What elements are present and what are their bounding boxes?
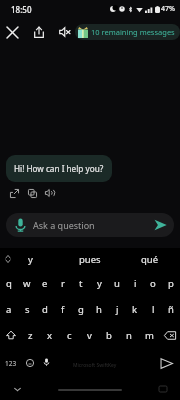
button[interactable]: q — [0, 270, 18, 296]
staticText: u — [114, 277, 120, 290]
staticText: 47% — [161, 4, 175, 14]
button[interactable]: Hide keyboard — [6, 378, 29, 400]
staticText: q — [6, 277, 12, 290]
button[interactable]: r — [54, 270, 72, 296]
button[interactable]: Send — [152, 348, 180, 378]
button[interactable]: Hi! How can I help you? — [6, 155, 112, 182]
button[interactable]: j — [108, 296, 126, 322]
button[interactable]: h — [90, 296, 108, 322]
button[interactable]: u — [108, 270, 126, 296]
button[interactable]: Backspace — [159, 322, 180, 348]
button[interactable]: z — [21, 322, 40, 348]
staticText: h — [96, 303, 102, 316]
button[interactable]: o — [144, 270, 162, 296]
staticText: 10 remaining messages — [91, 27, 175, 37]
staticText: w — [23, 277, 31, 290]
button[interactable]: 10 remaining messages — [75, 24, 180, 40]
button[interactable]: Emoji — [21, 348, 38, 378]
staticText: e — [42, 277, 48, 290]
button[interactable]: Share — [29, 22, 49, 42]
button[interactable]: 123 — [0, 348, 21, 378]
staticText: qué — [141, 253, 159, 266]
staticText: n — [126, 329, 132, 342]
staticText: v — [87, 329, 92, 342]
button[interactable]: Voice input — [6, 213, 174, 237]
button[interactable]: Mute — [55, 22, 75, 42]
staticText: ñ — [168, 303, 174, 316]
staticText: g — [78, 303, 84, 316]
button[interactable]: a — [0, 296, 18, 322]
button[interactable]: Home — [0, 378, 180, 400]
staticText: c — [67, 329, 72, 342]
staticText: l — [152, 303, 155, 316]
staticText: x — [47, 329, 53, 342]
staticText: y — [97, 277, 102, 290]
staticText: Microsoft SwiftKey — [73, 362, 117, 369]
button[interactable]: n — [119, 322, 139, 348]
staticText: 123 — [5, 359, 17, 368]
staticText: a — [6, 303, 12, 316]
staticText: Ask a question — [33, 219, 95, 231]
button[interactable]: l — [144, 296, 162, 322]
staticText: Hi! How can I help you? — [14, 163, 104, 174]
staticText: f — [61, 303, 65, 316]
button[interactable]: c — [59, 322, 79, 348]
staticText: pues — [79, 253, 101, 266]
staticText: m — [145, 329, 154, 342]
button[interactable]: Read aloud — [41, 184, 59, 202]
button[interactable]: Space — [54, 348, 152, 378]
button[interactable]: g — [72, 296, 90, 322]
button[interactable]: Open in new — [5, 184, 23, 202]
button[interactable]: f — [54, 296, 72, 322]
button[interactable]: e — [36, 270, 54, 296]
staticText: k — [132, 303, 138, 316]
staticText: t — [79, 277, 83, 290]
button[interactable]: m — [139, 322, 159, 348]
staticText: b — [106, 329, 112, 342]
staticText: p — [168, 277, 174, 290]
button[interactable]: ñ — [162, 296, 180, 322]
staticText: s — [25, 303, 30, 316]
button[interactable]: Voice typing — [38, 348, 54, 378]
button[interactable]: Close — [2, 22, 22, 42]
button[interactable]: y — [90, 270, 108, 296]
button[interactable]: t — [72, 270, 90, 296]
staticText: 18:50 — [11, 4, 32, 15]
button[interactable]: b — [99, 322, 119, 348]
button[interactable]: Copy — [23, 184, 41, 202]
button[interactable]: v — [79, 322, 99, 348]
staticText: i — [134, 277, 137, 290]
staticText: o — [150, 277, 156, 290]
button[interactable]: Shift — [0, 322, 21, 348]
staticText: y — [28, 253, 33, 266]
button[interactable]: Recents — [151, 378, 174, 400]
button[interactable]: p — [162, 270, 180, 296]
button[interactable]: Expand suggestions — [0, 248, 16, 270]
staticText: d — [42, 303, 48, 316]
staticText: r — [61, 277, 65, 290]
button[interactable]: x — [40, 322, 59, 348]
button[interactable]: pues — [60, 248, 120, 270]
staticText: j — [116, 303, 119, 316]
button[interactable]: d — [36, 296, 54, 322]
button[interactable]: s — [18, 296, 36, 322]
button[interactable]: i — [126, 270, 144, 296]
button[interactable]: w — [18, 270, 36, 296]
button[interactable]: qué — [120, 248, 180, 270]
button[interactable]: Send — [149, 214, 171, 236]
button[interactable]: Voice input — [13, 217, 27, 233]
staticText: z — [28, 329, 33, 342]
button[interactable]: y — [0, 248, 60, 270]
button[interactable]: k — [126, 296, 144, 322]
